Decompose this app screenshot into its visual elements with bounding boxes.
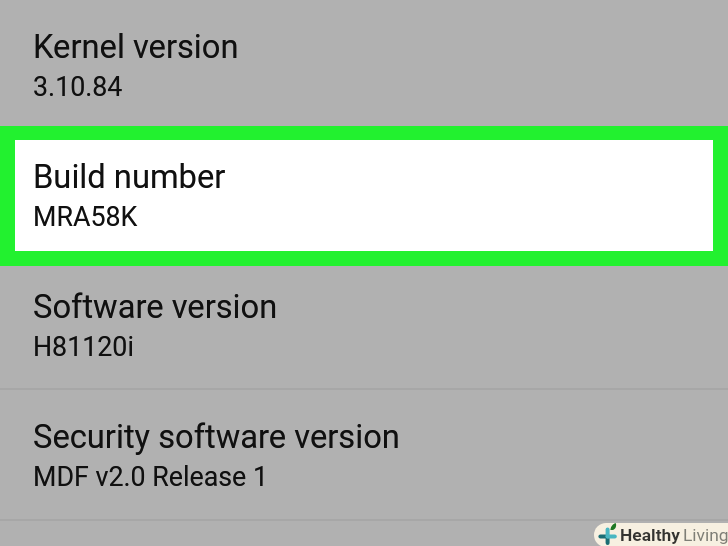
staticText: Build number	[33, 158, 226, 196]
staticText: 3.10.84	[33, 71, 123, 102]
button[interactable]: Build number	[15, 140, 713, 251]
button[interactable]: Build number	[0, 130, 728, 260]
staticText: Kernel version	[33, 28, 239, 66]
staticText: MDF v2.0 Release 1	[33, 461, 269, 492]
staticText: H81120i	[33, 331, 134, 362]
staticText: Security software version	[33, 418, 400, 456]
staticText: Build number	[33, 158, 226, 196]
staticText: Kernel version	[33, 28, 239, 66]
staticText: MRA58K	[33, 201, 138, 232]
staticText: Software version	[33, 288, 278, 326]
button[interactable]: Software version	[0, 260, 728, 390]
staticText: Living	[683, 525, 728, 545]
staticText: MRA58K	[33, 201, 138, 232]
button[interactable]: Security software version	[0, 390, 728, 520]
staticText: MRA58K	[33, 201, 138, 232]
button[interactable]: Healthy Living	[594, 523, 728, 546]
staticText: Healthy	[620, 525, 680, 545]
staticText: Security software version	[33, 418, 400, 456]
staticText: Build number	[33, 158, 226, 196]
button[interactable]: Kernel version	[0, 0, 728, 130]
staticText: H81120i	[33, 331, 134, 362]
staticText: MDF v2.0 Release 1	[33, 461, 269, 492]
staticText: 3.10.84	[33, 71, 123, 102]
staticText: MRA58K	[33, 201, 138, 232]
staticText: Software version	[33, 288, 278, 326]
staticText: Build number	[33, 158, 226, 196]
